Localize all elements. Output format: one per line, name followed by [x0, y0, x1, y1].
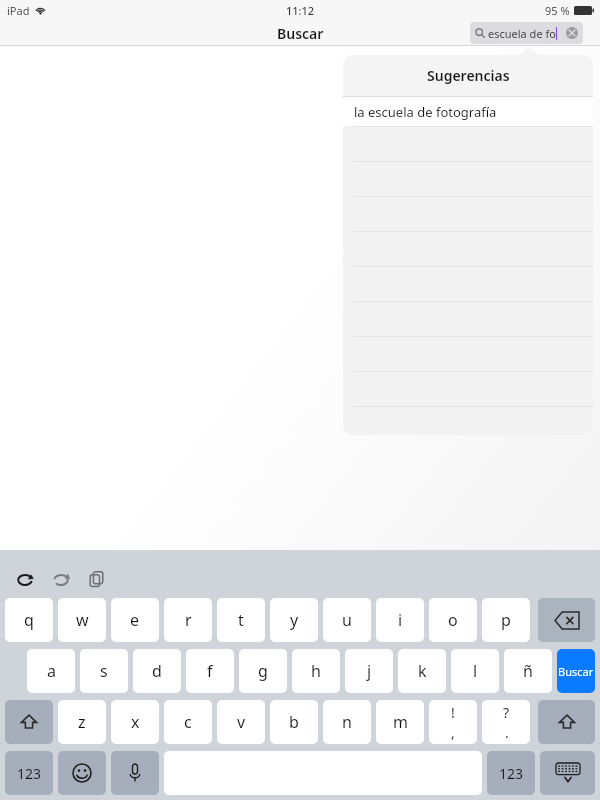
staticText: , — [451, 723, 455, 742]
button[interactable]: Dictation — [111, 751, 159, 795]
button[interactable]: v — [217, 700, 265, 744]
staticText: f — [207, 660, 213, 682]
button[interactable]: 123 — [487, 751, 535, 795]
staticText: 95 % — [545, 3, 570, 18]
button[interactable]: p — [482, 598, 530, 642]
button[interactable]: l — [451, 649, 499, 693]
button[interactable]: a — [27, 649, 75, 693]
staticText: ? — [503, 703, 510, 722]
button[interactable]: Undo — [8, 562, 42, 596]
staticText: y — [290, 609, 299, 631]
staticText: 11:12 — [286, 3, 315, 18]
button[interactable]: f — [186, 649, 234, 693]
staticText: u — [342, 609, 352, 631]
button[interactable]: la escuela de fotografía — [343, 97, 593, 126]
button[interactable]: d — [133, 649, 181, 693]
button[interactable]: i — [376, 598, 424, 642]
staticText: w — [76, 609, 89, 631]
staticText: b — [289, 711, 299, 733]
button[interactable]: t — [217, 598, 265, 642]
staticText: a — [47, 660, 56, 682]
button[interactable]: g — [239, 649, 287, 693]
staticText: l — [473, 660, 478, 682]
button[interactable]: k — [398, 649, 446, 693]
staticText: d — [152, 660, 162, 682]
staticText: k — [418, 660, 427, 682]
staticText: ! — [451, 703, 455, 722]
staticText: Sugerencias — [427, 66, 510, 85]
button[interactable]: w — [58, 598, 106, 642]
button[interactable]: y — [270, 598, 318, 642]
staticText: 123 — [499, 764, 524, 783]
staticText: Buscar — [558, 664, 594, 679]
button[interactable]: q — [5, 598, 53, 642]
button[interactable]: s — [80, 649, 128, 693]
button[interactable]: r — [164, 598, 212, 642]
button[interactable]: e — [111, 598, 159, 642]
button[interactable]: Clear search — [566, 27, 578, 39]
button[interactable]: ñ — [504, 649, 552, 693]
button[interactable]: x — [111, 700, 159, 744]
button[interactable]: Shift — [538, 700, 595, 744]
staticText: c — [184, 711, 192, 733]
staticText: Buscar — [277, 24, 324, 43]
button[interactable]: Shift — [5, 700, 53, 744]
staticText: x — [131, 711, 140, 733]
staticText: s — [100, 660, 108, 682]
staticText: t — [238, 609, 244, 631]
button[interactable]: Emoji — [58, 751, 106, 795]
staticText: o — [448, 609, 458, 631]
staticText: e — [130, 609, 140, 631]
staticText: p — [501, 609, 511, 631]
button[interactable]: Hide keyboard — [540, 751, 595, 795]
staticText: i — [398, 609, 403, 631]
button[interactable]: m — [376, 700, 424, 744]
staticText: z — [78, 711, 86, 733]
button[interactable]: n — [323, 700, 371, 744]
staticText: v — [237, 711, 246, 733]
staticText: j — [367, 660, 372, 682]
button[interactable]: ! — [429, 700, 477, 744]
button[interactable]: o — [429, 598, 477, 642]
button[interactable]: z — [58, 700, 106, 744]
button[interactable]: escuela de fo — [470, 22, 583, 44]
staticText: n — [342, 711, 352, 733]
staticText: . — [505, 723, 509, 742]
button[interactable]: Copy — [80, 562, 114, 596]
button[interactable]: Redo — [44, 562, 78, 596]
button[interactable]: Backspace — [538, 598, 595, 642]
staticText: q — [24, 609, 34, 631]
button[interactable]: 123 — [5, 751, 53, 795]
button[interactable]: ? — [482, 700, 530, 744]
button[interactable]: Buscar — [557, 649, 595, 693]
staticText: g — [258, 660, 268, 682]
staticText: 123 — [17, 764, 42, 783]
button[interactable]: h — [292, 649, 340, 693]
button[interactable]: c — [164, 700, 212, 744]
button[interactable]: u — [323, 598, 371, 642]
staticText: r — [185, 609, 192, 631]
staticText: m — [393, 711, 408, 733]
staticText: escuela de fo — [488, 26, 556, 41]
staticText: la escuela de fotografía — [354, 103, 497, 121]
button[interactable]: j — [345, 649, 393, 693]
staticText: ñ — [523, 660, 533, 682]
staticText: h — [311, 660, 321, 682]
staticText: iPad — [7, 3, 30, 18]
button[interactable]: b — [270, 700, 318, 744]
